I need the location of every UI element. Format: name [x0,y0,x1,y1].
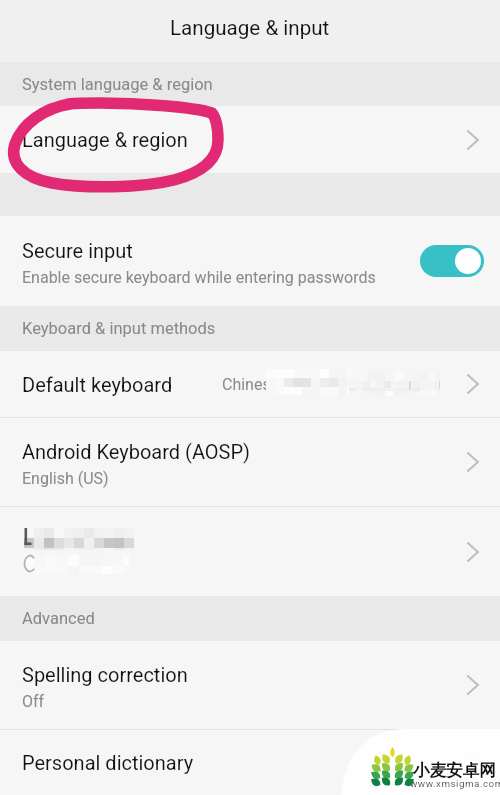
button[interactable]: Spelling correction [0,641,500,729]
staticText: System language & region [22,75,213,94]
staticText: Secure input [22,239,133,262]
button[interactable]: Secure input [0,216,500,306]
staticText: www.xmsigma.com [410,778,500,789]
button[interactable]: Android Keyboard (AOSP) [0,418,500,506]
button[interactable]: Default keyboard [0,351,500,417]
button[interactable]: Personal dictionary [0,730,500,795]
staticText: Android Keyboard (AOSP) [22,440,251,463]
button[interactable]: Language & region [0,106,500,173]
staticText: Advanced [22,609,95,628]
staticText: Keyboard & input methods [22,319,216,338]
staticText: Spelling correction [22,663,188,686]
button[interactable] [0,507,500,596]
staticText: Chinese [222,375,280,394]
staticText: Default keyboard [22,373,173,396]
staticText: Language & region [22,128,188,151]
staticText: Off [22,692,45,711]
staticText: Language & input [170,16,330,40]
staticText: English (US) [22,469,109,488]
staticText: Personal dictionary [22,751,194,774]
button[interactable]: Secure input switch [420,245,484,277]
staticText: Enable secure keyboard while entering pa… [22,268,376,287]
staticText: 小麦安卓网 [413,760,496,781]
